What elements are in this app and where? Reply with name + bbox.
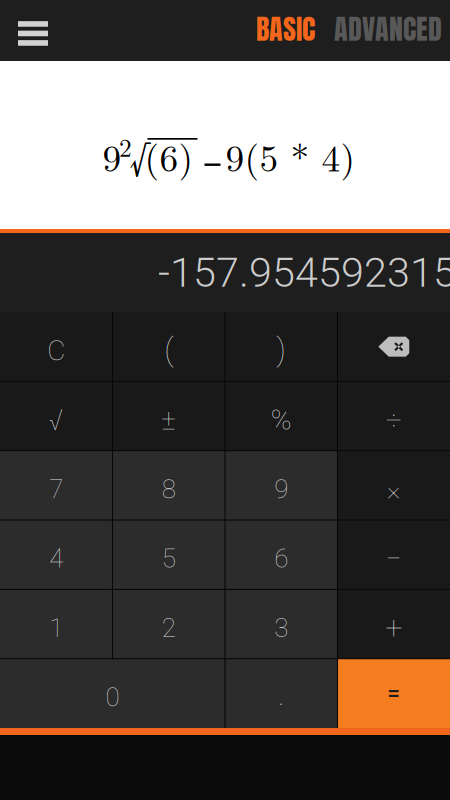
staticText: 9 — [274, 474, 288, 505]
staticText: % — [271, 404, 292, 436]
button[interactable]: 3 — [225, 589, 337, 659]
staticText: 2 — [119, 128, 132, 164]
staticText: . — [278, 679, 284, 712]
staticText: + — [385, 610, 402, 646]
staticText: ± — [161, 404, 176, 436]
button[interactable]: ± — [112, 381, 225, 451]
staticText: 9 — [102, 129, 121, 182]
button[interactable]: ÷ — [337, 381, 450, 451]
staticText: 8 — [162, 474, 176, 505]
staticText: × — [387, 474, 401, 505]
staticText: = — [387, 680, 400, 707]
staticText: 5 — [162, 543, 176, 574]
button[interactable]: Menu — [0, 0, 72, 61]
button[interactable] — [337, 312, 450, 381]
staticText: ADVANCED — [334, 8, 442, 50]
staticText: √ — [49, 403, 64, 437]
staticText: 4 — [49, 543, 63, 574]
staticText: 7 — [49, 474, 63, 505]
button[interactable]: 5 — [112, 520, 225, 589]
button[interactable]: + — [337, 589, 450, 659]
button[interactable]: 8 — [112, 451, 225, 520]
button[interactable]: % — [225, 381, 337, 451]
button[interactable]: ( — [112, 312, 225, 381]
staticText: 0 — [105, 682, 119, 713]
button[interactable]: . — [225, 659, 337, 728]
button[interactable]: ) — [225, 312, 337, 381]
button[interactable]: 0 — [0, 659, 225, 728]
staticText: 2 — [162, 613, 176, 643]
button[interactable]: = — [337, 659, 450, 728]
button[interactable]: 2 — [112, 589, 225, 659]
staticText: 3 — [274, 613, 288, 643]
button[interactable]: 6 — [225, 520, 337, 589]
staticText: √ — [129, 126, 149, 185]
button[interactable]: 1 — [0, 589, 112, 659]
staticText: 9(5 * 4) — [225, 129, 355, 182]
button[interactable]: C — [0, 312, 112, 381]
button[interactable]: ADVANCED — [334, 0, 442, 61]
staticText: ) — [276, 331, 286, 368]
button[interactable]: 7 — [0, 451, 112, 520]
staticText: ÷ — [386, 404, 402, 436]
staticText: 1 — [49, 613, 63, 643]
staticText: 6 — [274, 543, 288, 574]
staticText: − — [386, 542, 402, 575]
staticText: -157.954592315 — [158, 248, 450, 297]
button[interactable]: 4 — [0, 520, 112, 589]
staticText: C — [47, 334, 65, 367]
button[interactable]: BASIC — [256, 0, 315, 61]
button[interactable]: − — [337, 520, 450, 589]
button[interactable]: √ — [0, 381, 112, 451]
staticText: ( — [164, 331, 173, 368]
button[interactable]: 9 — [225, 451, 337, 520]
button[interactable]: × — [337, 451, 450, 520]
staticText: BASIC — [256, 8, 315, 50]
staticText: (6) — [144, 129, 193, 182]
